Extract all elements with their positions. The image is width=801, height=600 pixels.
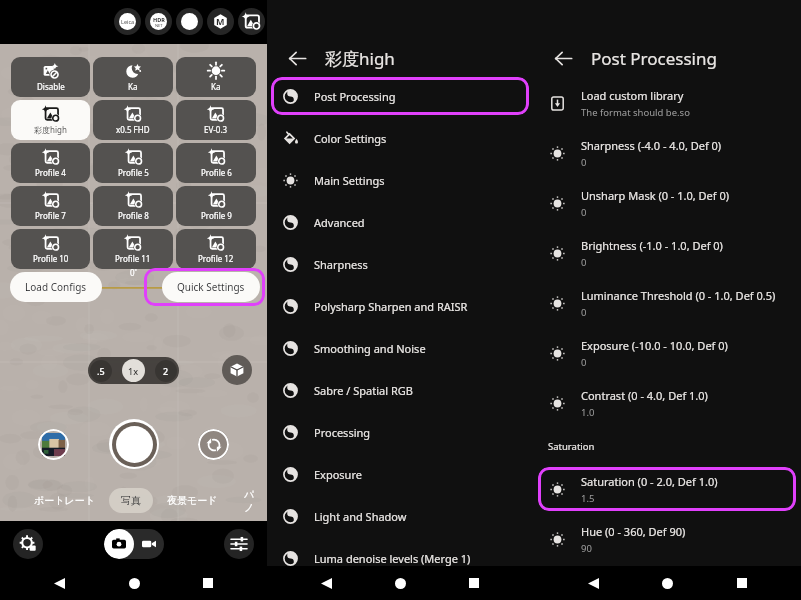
button[interactable]: Sharpness (-4.0 - 4.0, Def 0)	[533, 131, 801, 175]
button[interactable]: Load custom library	[533, 81, 801, 125]
button[interactable]: toggle	[176, 8, 203, 35]
staticText: Post Processing	[591, 47, 717, 70]
button[interactable]: Video mode	[134, 529, 164, 559]
button[interactable]: Photo mode	[104, 529, 134, 559]
staticText: 2	[163, 365, 169, 377]
button[interactable]: 2	[155, 360, 177, 382]
staticText: ポートレート	[34, 494, 95, 507]
staticText: Brightness (-1.0 - 1.0, Def 0)	[581, 238, 723, 253]
button[interactable]: Profile 9	[176, 186, 256, 226]
button[interactable]: Profile 11	[93, 229, 173, 269]
staticText: Saturation (0 - 2.0, Def 1.0)	[581, 474, 718, 489]
button[interactable]: Profile 12	[176, 229, 256, 269]
button[interactable]: Back	[578, 568, 608, 598]
staticText: 彩度high	[34, 124, 67, 135]
button[interactable]: Profile 6	[176, 143, 256, 183]
staticText: Luminance Threshold (0 - 1.0, Def 0.5)	[581, 288, 776, 303]
button[interactable]: Disable	[11, 57, 90, 97]
button[interactable]: Load Configs	[10, 272, 102, 302]
button[interactable]: toggle	[238, 8, 265, 35]
button[interactable]: パノラ	[232, 488, 267, 513]
staticText: Light and Shadow	[314, 509, 407, 524]
button[interactable]: Saturation (0 - 2.0, Def 1.0)	[538, 467, 796, 511]
button[interactable]: Smoothing and Noise	[267, 329, 533, 367]
staticText: Profile 6	[201, 167, 232, 178]
staticText: M	[216, 15, 225, 27]
button[interactable]: Exposure (-10.0 - 10.0, Def 0)	[533, 331, 801, 375]
button[interactable]: Contrast (0 - 4.0, Def 1.0)	[533, 381, 801, 425]
button[interactable]: Home	[385, 568, 415, 598]
button[interactable]: Lens modes	[222, 355, 252, 385]
button[interactable]: Profile 10	[11, 229, 90, 269]
button[interactable]: 夜景モード	[155, 488, 230, 513]
button[interactable]: Ka	[176, 57, 256, 97]
button[interactable]: Sabre / Spatial RGB	[267, 371, 533, 409]
button[interactable]: Switch camera	[198, 429, 229, 460]
button[interactable]: Hue (0 - 360, Def 90)	[533, 517, 801, 561]
button[interactable]: Color Settings	[267, 119, 533, 157]
staticText: 0	[581, 356, 587, 369]
staticText: Main Settings	[314, 173, 385, 188]
button[interactable]: Settings	[13, 529, 43, 559]
button[interactable]: Quick Settings	[162, 272, 260, 302]
button[interactable]: Home	[652, 568, 682, 598]
staticText: Profile 9	[201, 210, 232, 221]
staticText: NET	[155, 23, 163, 28]
staticText: 彩度high	[325, 47, 395, 70]
button[interactable]: toggle	[145, 8, 172, 35]
button[interactable]: Ka	[93, 57, 173, 97]
button[interactable]: Back	[44, 568, 74, 598]
button[interactable]: Light and Shadow	[267, 497, 533, 535]
button[interactable]: toggle	[114, 8, 141, 35]
button[interactable]: Luminance Threshold (0 - 1.0, Def 0.5)	[533, 281, 801, 325]
staticText: Quick Settings	[177, 280, 245, 294]
staticText: 1x	[128, 365, 139, 377]
button[interactable]: EV-0.3	[176, 100, 256, 140]
button[interactable]: Recents	[459, 568, 489, 598]
button[interactable]: Recents	[727, 568, 757, 598]
button[interactable]: Exposure	[267, 455, 533, 493]
button[interactable]: Processing	[267, 413, 533, 451]
button[interactable]: Post Processing	[271, 77, 529, 115]
button[interactable]: 彩度high	[11, 100, 90, 140]
button[interactable]: Advanced	[267, 203, 533, 241]
staticText: 1.5	[581, 492, 595, 505]
staticText: Post Processing	[314, 89, 396, 104]
staticText: Profile 10	[33, 253, 69, 264]
button[interactable]: toggle	[207, 8, 234, 35]
button[interactable]: Back	[311, 568, 341, 598]
button[interactable]: Profile 4	[11, 143, 90, 183]
staticText: Profile 7	[35, 210, 66, 221]
button[interactable]: Gallery	[38, 429, 69, 460]
staticText: Processing	[314, 425, 371, 440]
button[interactable]: Back	[283, 44, 311, 72]
button[interactable]: Shutter	[109, 419, 159, 469]
button[interactable]: Main Settings	[267, 161, 533, 199]
button[interactable]: Tune	[224, 529, 254, 559]
button[interactable]: Back	[549, 44, 577, 72]
button[interactable]: Polysharp Sharpen and RAISR	[267, 287, 533, 325]
staticText: Load Configs	[25, 280, 87, 294]
staticText: Advanced	[314, 215, 365, 230]
staticText: Profile 8	[118, 210, 149, 221]
button[interactable]: Home	[119, 568, 149, 598]
button[interactable]: Sharpness	[267, 245, 533, 283]
button[interactable]: Recents	[193, 568, 223, 598]
button[interactable]: .5	[90, 360, 112, 382]
staticText: 0	[581, 256, 587, 269]
button[interactable]: 写真	[109, 488, 153, 513]
button[interactable]: Profile 5	[93, 143, 173, 183]
button[interactable]: 1x	[122, 359, 145, 382]
button[interactable]: ポートレート	[22, 488, 107, 513]
button[interactable]: Unsharp Mask (0 - 1.0, Def 0)	[533, 181, 801, 225]
button[interactable]: Brightness (-1.0 - 1.0, Def 0)	[533, 231, 801, 275]
button[interactable]: Profile 8	[93, 186, 173, 226]
button[interactable]: Profile 7	[11, 186, 90, 226]
staticText: Exposure	[314, 467, 362, 482]
button[interactable]: Luma denoise levels (Merge 1)	[267, 539, 533, 577]
staticText: Profile 5	[118, 167, 149, 178]
staticText: x0.5 FHD	[116, 124, 150, 135]
button[interactable]: x0.5 FHD	[93, 100, 173, 140]
staticText: Load custom library	[581, 88, 684, 103]
staticText: 写真	[121, 494, 141, 507]
